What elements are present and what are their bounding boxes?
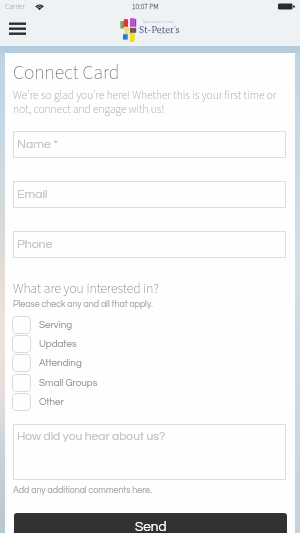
staticText: How did you hear about us?	[17, 430, 166, 442]
staticText: What are you interested in?	[13, 279, 159, 298]
staticText: Send	[135, 520, 167, 533]
staticText: Carrier	[5, 1, 25, 12]
staticText: Add any additional comments here.	[13, 486, 152, 495]
button[interactable]: Email	[13, 181, 286, 208]
button[interactable]: Small Groups	[12, 374, 212, 392]
button[interactable]: Send	[14, 513, 287, 533]
staticText: Phone	[17, 238, 53, 251]
staticText: St-Peter's	[139, 23, 180, 36]
button[interactable]: Updates	[12, 335, 212, 353]
button[interactable]: Other	[12, 393, 212, 411]
staticText: Small Groups	[39, 378, 98, 388]
button[interactable]: How did you hear about us?	[13, 424, 286, 480]
staticText: Other	[39, 397, 64, 407]
staticText: 10:07 PM	[132, 1, 159, 12]
staticText: Serving	[39, 320, 73, 330]
button[interactable]: Phone	[13, 231, 286, 258]
staticText: Anglican Church	[157, 31, 180, 36]
staticText: Attending	[39, 358, 82, 368]
button[interactable]: Serving	[12, 316, 212, 334]
staticText: Please check any and all that apply.	[13, 300, 153, 309]
staticText: Name *	[17, 138, 59, 151]
button[interactable]: Name *	[13, 131, 286, 158]
staticText: Connect Card	[13, 59, 120, 87]
staticText: We're so glad you're here! Whether this …	[13, 87, 289, 118]
button[interactable]: Menu	[9, 22, 26, 36]
button[interactable]: Attending	[12, 354, 212, 372]
other: Wi-Fi	[35, 3, 44, 10]
staticText: Updates	[39, 339, 77, 349]
staticText: Église anglicane du Canada	[143, 20, 174, 24]
staticText: Email	[17, 188, 48, 201]
